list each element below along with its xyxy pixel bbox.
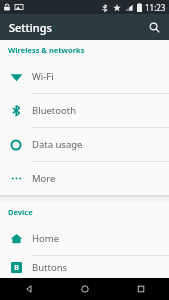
- button[interactable]: Home: [0, 222, 169, 255]
- staticText: Home: [32, 232, 60, 245]
- button[interactable]: Back: [0, 278, 57, 300]
- button[interactable]: Search: [143, 16, 165, 38]
- staticText: Settings: [9, 20, 52, 35]
- staticText: B: [14, 263, 19, 273]
- staticText: Wireless & networks: [8, 45, 85, 55]
- staticText: More: [32, 172, 56, 185]
- button[interactable]: B: [0, 256, 169, 278]
- button[interactable]: Recent apps: [113, 278, 169, 300]
- staticText: 11:23: [145, 2, 166, 13]
- staticText: Bluetooth: [32, 104, 77, 117]
- button[interactable]: Home: [57, 278, 113, 300]
- staticText: Device: [8, 207, 33, 217]
- button[interactable]: Data usage: [0, 128, 169, 161]
- button[interactable]: Bluetooth: [0, 94, 169, 127]
- button[interactable]: Wi-Fi: [0, 60, 169, 93]
- button[interactable]: More: [0, 162, 169, 195]
- staticText: Buttons: [32, 261, 68, 274]
- staticText: Data usage: [32, 138, 83, 151]
- staticText: Wi-Fi: [32, 70, 54, 83]
